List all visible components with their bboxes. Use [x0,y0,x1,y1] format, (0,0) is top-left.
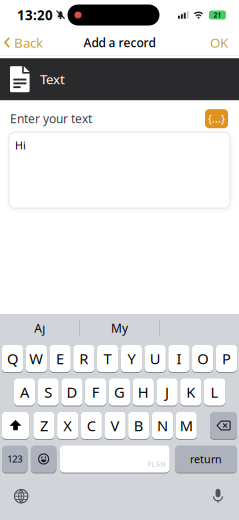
button[interactable]: P [216,345,237,372]
button[interactable]: Insert variable [205,109,228,128]
staticText: PL EN [148,460,166,468]
button[interactable]: I [168,345,189,372]
button[interactable]: R [73,345,94,372]
button[interactable]: Back [0,34,43,51]
button[interactable]: Next keyboard [0,489,28,503]
button[interactable]: L [204,378,225,405]
staticText: My [111,320,128,336]
staticText: E [56,349,64,368]
staticText: J [165,382,169,402]
button[interactable]: T [97,345,118,372]
staticText: T [104,349,112,368]
button[interactable]: E [49,345,71,372]
button[interactable]: V [104,412,126,439]
staticText: I [176,349,181,368]
button[interactable]: C [81,412,102,439]
staticText: M [180,416,193,435]
staticText: P [222,349,231,368]
button[interactable]: OK [210,34,239,51]
staticText: Add a record [83,34,155,50]
staticText: W [29,349,43,368]
staticText: H [138,382,149,402]
button[interactable]: Emoji [31,445,56,472]
button[interactable]: K [180,378,201,405]
staticText: 13:20 [17,6,53,24]
staticText: {...} [208,112,225,126]
staticText: return [190,452,222,466]
button[interactable]: X [57,412,78,439]
button[interactable]: S [38,378,59,405]
button[interactable]: Delete [210,412,237,439]
staticText: Enter your text [10,111,92,127]
staticText: OK [210,34,228,51]
button[interactable]: B [128,412,149,439]
button[interactable]: Z [33,412,54,439]
staticText: N [157,416,168,435]
staticText: L [211,382,219,402]
staticText: Y [127,349,135,368]
button[interactable]: U [145,345,166,372]
staticText: S [44,382,52,402]
staticText: B [134,416,144,435]
staticText: V [110,416,119,435]
staticText: Back [14,34,43,51]
staticText: R [79,349,88,368]
button[interactable]: W [26,345,47,372]
button[interactable]: O [192,345,213,372]
button[interactable]: F [85,378,106,405]
button[interactable]: A [14,378,35,405]
button[interactable]: N [152,412,173,439]
staticText: G [114,382,125,402]
button[interactable]: Space [60,445,170,472]
button[interactable]: Q [2,345,23,372]
button[interactable]: My [80,320,159,336]
staticText: Hi [15,138,26,152]
button[interactable]: G [109,378,130,405]
staticText: Q [7,349,18,368]
button[interactable]: return [175,445,237,472]
staticText: O [197,349,208,368]
staticText: D [66,382,77,402]
button[interactable]: Y [121,345,142,372]
button[interactable]: Dictation [213,489,239,504]
button[interactable]: D [61,378,83,405]
staticText: Z [40,416,48,435]
staticText: X [63,416,72,435]
staticText: Aj [34,320,45,336]
button[interactable]: 123 [2,445,27,472]
button[interactable]: Aj [0,320,80,336]
staticText: 21 [213,11,221,19]
staticText: U [150,349,161,368]
button[interactable]: M [176,412,197,439]
staticText: 123 [7,453,22,465]
button[interactable]: J [156,378,178,405]
button[interactable]: Shift [2,412,29,439]
staticText: A [20,382,29,402]
staticText: F [92,382,100,402]
button[interactable]: H [133,378,154,405]
staticText: C [87,416,96,435]
staticText: K [186,382,195,402]
staticText: Text [40,70,65,88]
